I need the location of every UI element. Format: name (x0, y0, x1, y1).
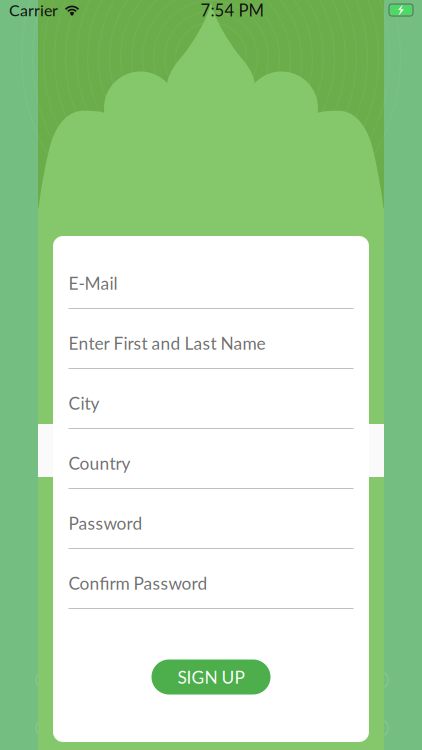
staticText: City (68, 393, 99, 413)
staticText: Country (68, 453, 130, 473)
staticText: SIGN UP (177, 667, 244, 687)
staticText: E-Mail (68, 273, 117, 293)
button[interactable]: City (68, 372, 353, 432)
staticText: Enter First and Last Name (68, 333, 265, 353)
button[interactable]: Password (68, 492, 353, 552)
button[interactable]: Confirm Password (68, 552, 353, 612)
staticText: Password (68, 513, 142, 533)
button[interactable]: Enter First and Last Name (68, 312, 353, 372)
button[interactable]: E-Mail (68, 252, 353, 312)
button[interactable]: SIGN UP (151, 659, 270, 694)
staticText: Confirm Password (68, 573, 207, 593)
button[interactable]: Country (68, 432, 353, 492)
staticText: 7:54 PM (200, 0, 263, 20)
staticText: Carrier (9, 0, 58, 20)
